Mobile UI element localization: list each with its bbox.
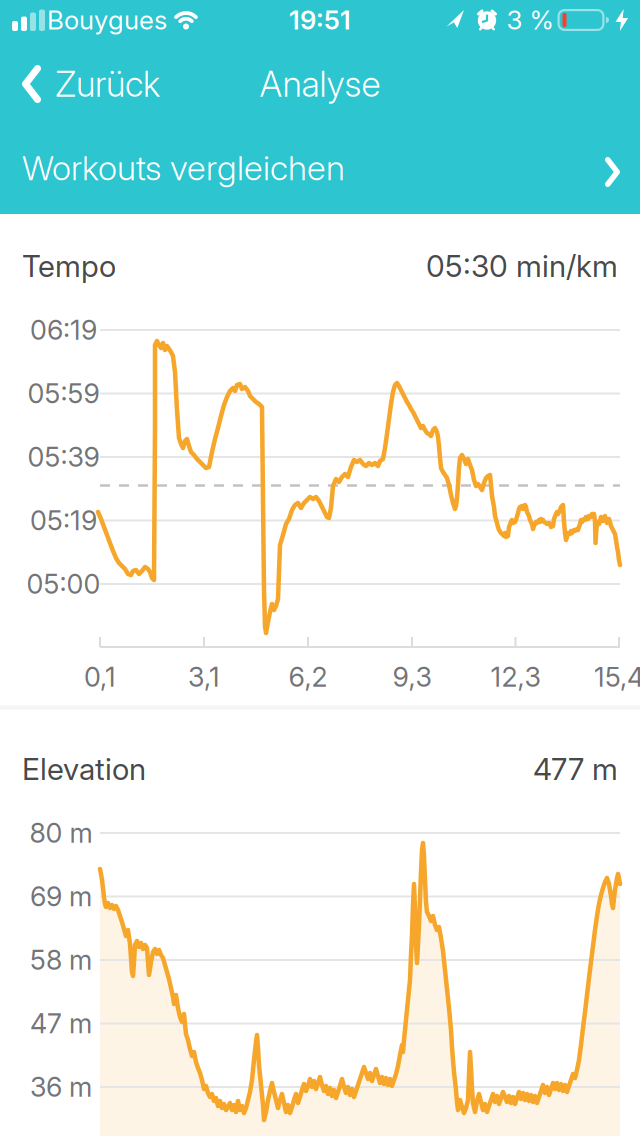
staticText: 36 m <box>30 1071 92 1103</box>
staticText: 06:19 <box>30 314 97 346</box>
staticText: 3 % <box>506 4 553 36</box>
staticText: 05:00 <box>26 568 100 600</box>
staticText: 05:59 <box>27 377 99 410</box>
staticText: Elevation <box>22 751 146 787</box>
staticText: 15,4 <box>594 661 640 693</box>
staticText: Workouts vergleichen <box>22 147 345 188</box>
staticText: 19:51 <box>289 4 351 36</box>
staticText: 6,2 <box>288 661 327 693</box>
staticText: Bouygues <box>47 4 167 36</box>
staticText: 05:39 <box>27 441 99 473</box>
staticText: 3,1 <box>188 661 220 693</box>
staticText: 12,3 <box>490 661 540 693</box>
staticText: Tempo <box>22 248 116 284</box>
staticText: Zurück <box>55 63 160 105</box>
staticText: 47 m <box>30 1007 92 1040</box>
staticText: Analyse <box>259 63 380 105</box>
staticText: 05:19 <box>30 504 97 537</box>
staticText: 80 m <box>29 817 92 849</box>
staticText: 477 m <box>533 751 618 787</box>
staticText: 9,3 <box>392 661 431 693</box>
staticText: 05:30 min/km <box>426 248 618 284</box>
staticText: 0,1 <box>84 661 116 693</box>
button[interactable]: Zurück <box>22 63 160 105</box>
staticText: 69 m <box>30 880 92 913</box>
button[interactable]: Workouts vergleichen <box>0 122 640 214</box>
staticText: 58 m <box>30 944 92 976</box>
